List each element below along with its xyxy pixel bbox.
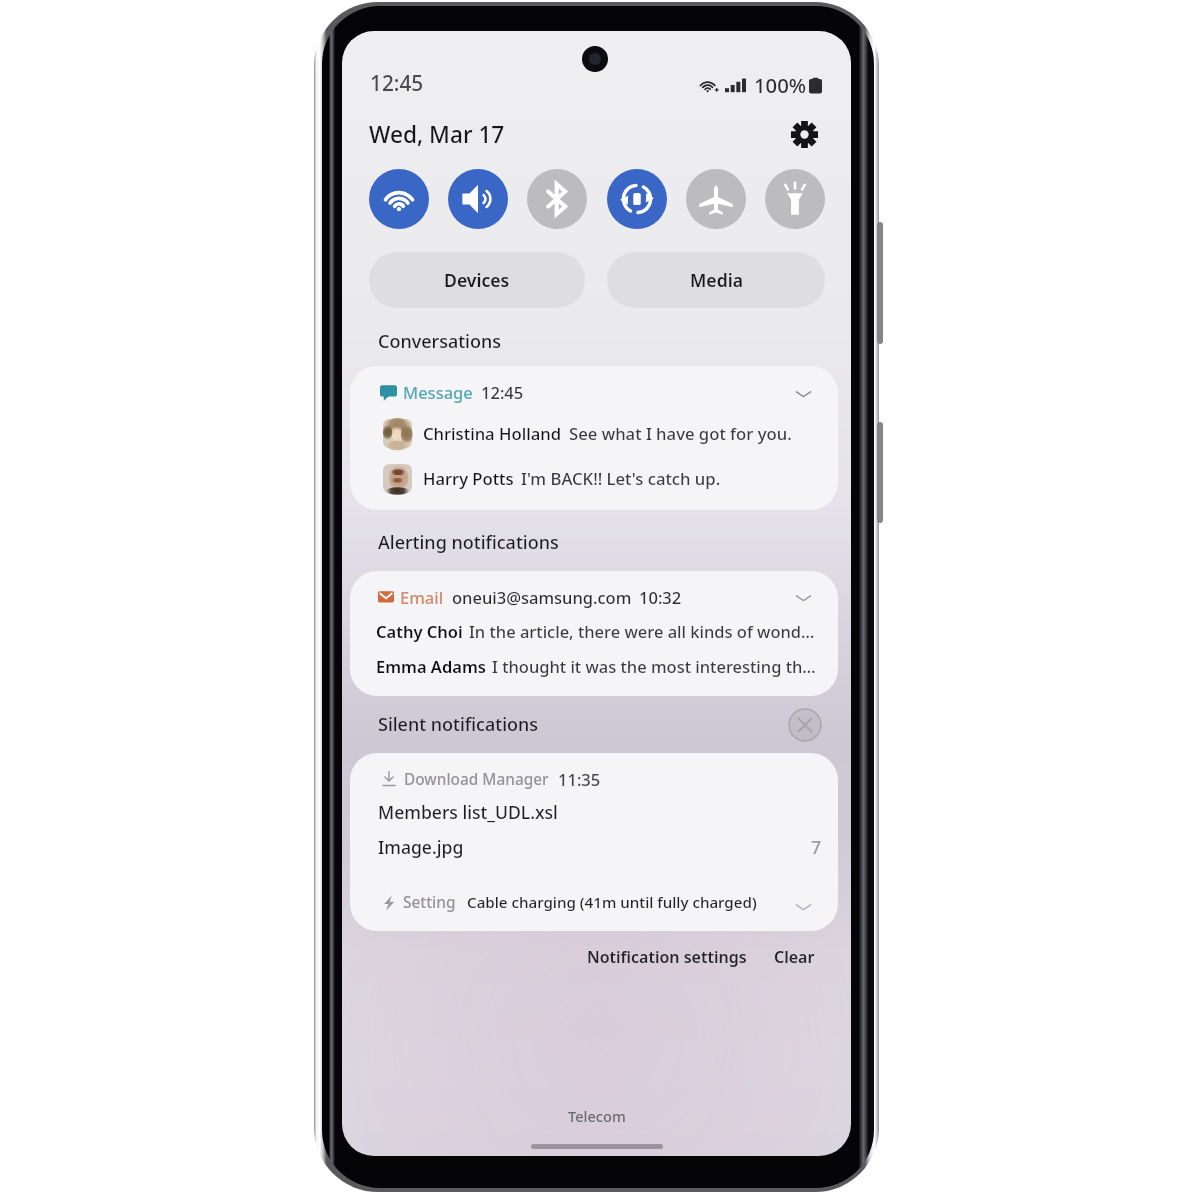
staticText: Wed, Mar 17	[369, 119, 505, 150]
button[interactable]: Christina Holland	[383, 419, 829, 448]
staticText: Image.jpg	[378, 835, 464, 859]
staticText: Notification settings	[587, 946, 747, 968]
button[interactable]: Media	[607, 252, 825, 308]
staticText: Cable charging (41m until fully charged)	[467, 892, 757, 913]
staticText: 100%	[754, 71, 807, 99]
staticText: I thought it was the most interesting th…	[492, 655, 816, 677]
button[interactable]: Expand email notification	[788, 582, 818, 612]
staticText: Clear	[774, 946, 815, 968]
staticText: Telecom	[568, 1106, 626, 1126]
button[interactable]: Flashlight	[765, 169, 825, 229]
staticText: 7	[811, 835, 822, 859]
button[interactable]: Settings	[784, 114, 824, 154]
staticText: Cathy Choi	[376, 620, 463, 642]
button[interactable]: Expand message notification	[788, 378, 818, 408]
staticText: 12:45	[481, 381, 524, 403]
button[interactable]: Airplane mode	[686, 169, 746, 229]
button[interactable]: Members list_UDL.xsl	[378, 800, 808, 824]
staticText: Silent notifications	[378, 712, 539, 737]
button[interactable]: Image.jpg	[378, 835, 822, 859]
staticText: See what I have got for you.	[569, 422, 792, 445]
staticText: Harry Potts	[423, 467, 514, 490]
staticText: Emma Adams	[376, 655, 486, 677]
staticText: Download Manager	[404, 769, 549, 790]
button[interactable]: Clear	[768, 939, 821, 975]
button[interactable]: Auto rotate	[607, 169, 667, 229]
button[interactable]: Sound	[448, 169, 508, 229]
staticText: I'm BACK!! Let's catch up.	[521, 467, 721, 490]
staticText: 10:32	[639, 586, 682, 608]
button[interactable]: Harry Potts	[383, 464, 829, 493]
button[interactable]: Expand charging notification	[788, 891, 818, 921]
staticText: Media	[690, 268, 743, 292]
staticText: Email	[400, 586, 444, 608]
staticText: 12:45	[370, 69, 424, 97]
button[interactable]: Cathy Choi	[376, 620, 826, 642]
button[interactable]: Devices	[369, 252, 585, 308]
staticText: oneui3@samsung.com	[452, 586, 632, 608]
staticText: 11:35	[558, 768, 601, 790]
staticText: Alerting notifications	[378, 530, 559, 555]
staticText: Christina Holland	[423, 422, 562, 445]
staticText: Devices	[444, 268, 510, 292]
button[interactable]: Bluetooth	[527, 169, 587, 229]
staticText: In the article, there were all kinds of …	[469, 620, 815, 642]
button[interactable]: Emma Adams	[376, 655, 826, 677]
staticText: Setting	[403, 892, 456, 913]
staticText: Conversations	[378, 329, 501, 354]
button[interactable]: Notification settings	[581, 939, 753, 975]
button[interactable]: Dismiss silent notifications	[788, 708, 822, 742]
staticText: Members list_UDL.xsl	[378, 800, 558, 824]
button[interactable]: Wi-Fi	[369, 169, 429, 229]
staticText: Message	[403, 381, 473, 403]
